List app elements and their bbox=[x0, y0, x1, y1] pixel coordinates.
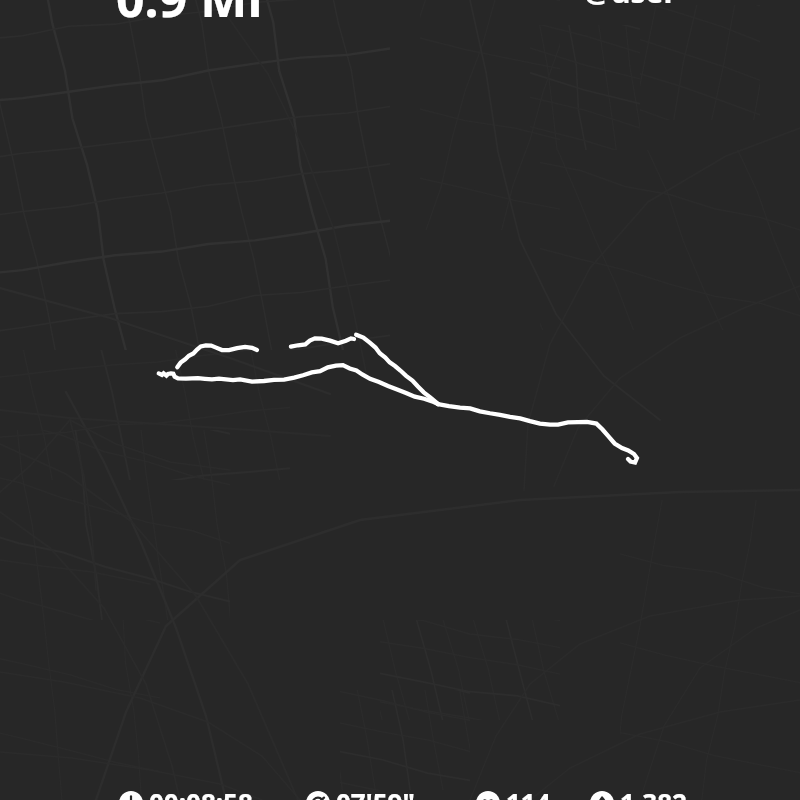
staticText: @user bbox=[584, 0, 677, 12]
button[interactable]: Average pace 7 minutes 59 seconds bbox=[306, 785, 415, 800]
button[interactable]: Average heart rate 114 bbox=[476, 785, 551, 800]
button[interactable]: 0.9 Mi bbox=[116, 0, 263, 32]
staticText: 07'59" bbox=[336, 785, 415, 800]
staticText: 1,382 bbox=[620, 785, 687, 800]
staticText: 0.9 Mi bbox=[116, 0, 263, 32]
button[interactable]: Duration 00:08:58 bbox=[119, 785, 253, 800]
staticText: 00:08:58 bbox=[149, 785, 253, 800]
button[interactable]: Activity route map bbox=[0, 0, 800, 800]
staticText: 114 bbox=[506, 785, 551, 800]
button[interactable]: @user bbox=[584, 0, 677, 12]
button[interactable]: 1,382 calories bbox=[590, 785, 687, 800]
